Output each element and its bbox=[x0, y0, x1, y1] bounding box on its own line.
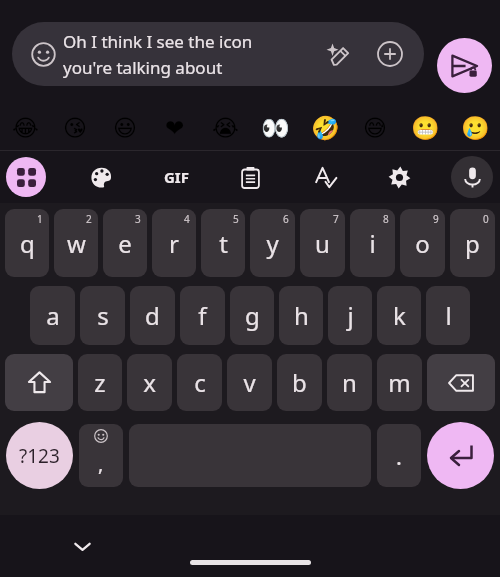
button[interactable]: Send bbox=[437, 38, 492, 93]
button[interactable]: h bbox=[279, 286, 323, 345]
button[interactable]: . bbox=[377, 424, 421, 487]
button[interactable]: Add attachment bbox=[368, 32, 412, 76]
staticText: u bbox=[315, 227, 330, 260]
button[interactable]: ❤️ bbox=[150, 106, 200, 150]
staticText: i bbox=[369, 227, 376, 260]
staticText: g bbox=[245, 299, 260, 332]
button[interactable]: Shift bbox=[5, 354, 73, 411]
button[interactable]: u bbox=[300, 209, 345, 277]
staticText: h bbox=[294, 299, 309, 332]
button[interactable]: 😃 bbox=[100, 106, 150, 150]
staticText: j bbox=[347, 299, 354, 332]
button[interactable]: q bbox=[5, 209, 49, 277]
button[interactable]: Spell check bbox=[304, 156, 346, 198]
staticText: f bbox=[198, 299, 207, 332]
staticText: ?123 bbox=[19, 443, 60, 469]
button[interactable]: 😘 bbox=[50, 106, 100, 150]
staticText: 😭 bbox=[212, 115, 239, 142]
button[interactable]: o bbox=[400, 209, 445, 277]
staticText: GIF bbox=[164, 167, 189, 187]
staticText: 7 bbox=[333, 212, 339, 226]
button[interactable]: e bbox=[103, 209, 147, 277]
staticText: y bbox=[266, 227, 279, 260]
button[interactable]: Hide keyboard bbox=[61, 525, 103, 567]
staticText: n bbox=[342, 366, 357, 399]
button[interactable]: 😭 bbox=[200, 106, 250, 150]
button[interactable]: Backspace bbox=[427, 354, 495, 411]
button[interactable]: Emoji bbox=[12, 22, 424, 86]
button[interactable]: 🥲 bbox=[450, 106, 500, 150]
staticText: you're talking about bbox=[63, 56, 223, 79]
staticText: z bbox=[94, 366, 106, 399]
button[interactable]: s bbox=[80, 286, 125, 345]
button[interactable]: 😂 bbox=[0, 106, 50, 150]
staticText: 8 bbox=[383, 212, 389, 226]
staticText: 🥲 bbox=[461, 115, 490, 142]
staticText: d bbox=[145, 299, 160, 332]
staticText: l bbox=[445, 299, 452, 332]
staticText: 2 bbox=[86, 212, 92, 226]
button[interactable]: a bbox=[30, 286, 75, 345]
button[interactable]: j bbox=[328, 286, 372, 345]
button[interactable]: i bbox=[350, 209, 395, 277]
button[interactable]: GIF bbox=[154, 155, 198, 199]
button[interactable]: d bbox=[130, 286, 175, 345]
staticText: Oh I think I see the icon bbox=[63, 30, 253, 53]
button[interactable]: Voice input bbox=[451, 156, 493, 198]
staticText: m bbox=[388, 366, 411, 399]
button[interactable]: v bbox=[227, 354, 272, 411]
staticText: 👀 bbox=[261, 115, 290, 142]
button[interactable]: 🤣 bbox=[300, 106, 350, 150]
button[interactable]: n bbox=[327, 354, 372, 411]
staticText: q bbox=[20, 227, 35, 260]
button[interactable]: c bbox=[177, 354, 222, 411]
button[interactable]: k bbox=[377, 286, 421, 345]
staticText: r bbox=[169, 227, 179, 260]
staticText: a bbox=[46, 299, 60, 332]
button[interactable]: ?123 bbox=[6, 422, 73, 489]
button[interactable]: r bbox=[152, 209, 196, 277]
button[interactable]: Settings bbox=[378, 156, 420, 198]
button[interactable]: m bbox=[377, 354, 422, 411]
staticText: ❤️ bbox=[165, 115, 185, 142]
button[interactable]: 😬 bbox=[400, 106, 450, 150]
staticText: s bbox=[97, 299, 109, 332]
staticText: 6 bbox=[283, 212, 289, 226]
staticText: w bbox=[67, 227, 86, 260]
staticText: o bbox=[415, 227, 430, 260]
staticText: 9 bbox=[433, 212, 439, 226]
button[interactable]: w bbox=[54, 209, 98, 277]
staticText: k bbox=[393, 299, 406, 332]
staticText: t bbox=[219, 227, 228, 260]
staticText: 4 bbox=[184, 212, 190, 226]
button[interactable]: f bbox=[180, 286, 225, 345]
button[interactable]: Clipboard bbox=[229, 156, 271, 198]
button[interactable]: 😅 bbox=[350, 106, 400, 150]
button[interactable]: Emoji and comma bbox=[79, 424, 123, 487]
button[interactable]: b bbox=[277, 354, 322, 411]
button[interactable]: g bbox=[230, 286, 274, 345]
staticText: 😂 bbox=[12, 115, 39, 142]
staticText: 🤣 bbox=[311, 115, 340, 142]
staticText: 5 bbox=[233, 212, 239, 226]
staticText: x bbox=[143, 366, 156, 399]
button[interactable]: p bbox=[450, 209, 495, 277]
button[interactable]: 👀 bbox=[250, 106, 300, 150]
staticText: b bbox=[292, 366, 307, 399]
staticText: 0 bbox=[483, 212, 489, 226]
button[interactable]: x bbox=[127, 354, 172, 411]
button[interactable]: z bbox=[78, 354, 122, 411]
staticText: e bbox=[118, 227, 132, 260]
button[interactable]: Toolbar apps bbox=[6, 157, 46, 197]
button[interactable]: t bbox=[201, 209, 245, 277]
staticText: p bbox=[465, 227, 480, 260]
staticText: 😅 bbox=[363, 115, 387, 142]
button[interactable]: Emoji bbox=[21, 32, 65, 76]
staticText: 😬 bbox=[411, 115, 440, 142]
button[interactable]: y bbox=[250, 209, 295, 277]
button[interactable]: Themes bbox=[80, 156, 122, 198]
button[interactable]: Enter bbox=[427, 422, 494, 489]
button[interactable]: Magic compose bbox=[318, 34, 358, 74]
button[interactable]: l bbox=[426, 286, 470, 345]
